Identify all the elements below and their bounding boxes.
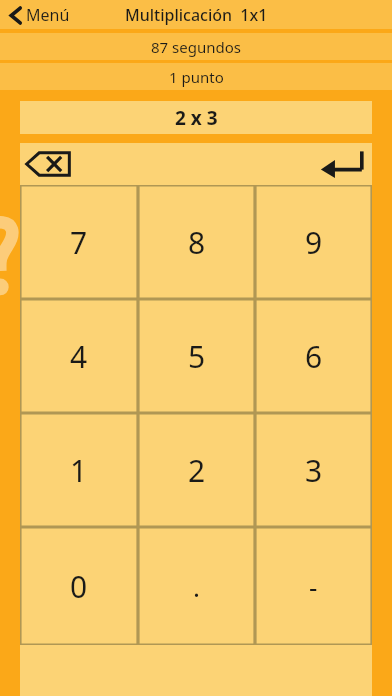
- button[interactable]: .: [138, 527, 255, 645]
- button[interactable]: 8: [138, 185, 255, 299]
- button[interactable]: Backspace: [22, 145, 74, 183]
- button[interactable]: 0: [20, 527, 138, 645]
- staticText: 4: [70, 336, 88, 377]
- staticText: 87 segundos: [151, 37, 241, 57]
- staticText: .: [193, 569, 200, 604]
- button[interactable]: 2: [138, 413, 255, 527]
- staticText: -: [309, 569, 318, 604]
- button[interactable]: 4: [20, 299, 138, 413]
- staticText: Menú: [26, 4, 70, 26]
- staticText: 1: [70, 450, 88, 491]
- button[interactable]: 7: [20, 185, 138, 299]
- staticText: 2: [188, 450, 206, 491]
- staticText: Multiplicación 1x1: [125, 4, 268, 26]
- staticText: 5: [188, 336, 206, 377]
- staticText: 0: [70, 566, 88, 607]
- button[interactable]: 5: [138, 299, 255, 413]
- button[interactable]: -: [255, 527, 372, 645]
- button[interactable]: 6: [255, 299, 372, 413]
- button[interactable]: 1: [20, 413, 138, 527]
- staticText: 2 x 3: [175, 105, 218, 131]
- staticText: 8: [188, 222, 206, 263]
- staticText: 3: [305, 450, 323, 491]
- button[interactable]: 9: [255, 185, 372, 299]
- button[interactable]: Enter: [316, 145, 368, 183]
- staticText: 1 punto: [169, 67, 224, 87]
- button[interactable]: Menú: [0, 1, 82, 29]
- staticText: 7: [70, 222, 88, 263]
- button[interactable]: 3: [255, 413, 372, 527]
- staticText: 6: [305, 336, 323, 377]
- staticText: 9: [305, 222, 323, 263]
